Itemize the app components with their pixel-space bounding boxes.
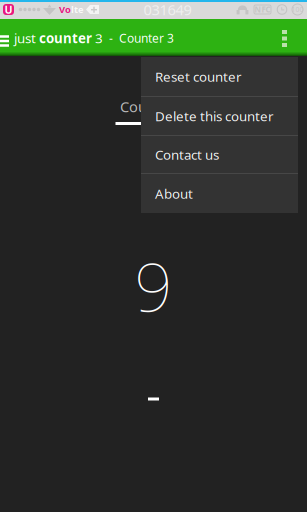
button[interactable]: Counter 3 — [115, 56, 191, 125]
staticText: Counter 3 — [120, 97, 187, 116]
button[interactable]: Open navigation drawer — [0, 23, 9, 47]
button[interactable]: Contact us — [141, 136, 298, 174]
staticText: Vo — [59, 3, 71, 16]
staticText: Reset counter — [155, 68, 242, 85]
staticText: 100 — [291, 5, 303, 14]
staticText: About — [155, 185, 193, 202]
button[interactable]: More options — [272, 23, 307, 47]
staticText: U — [4, 2, 12, 17]
staticText: 9 — [134, 242, 172, 330]
button[interactable]: Reset counter — [141, 57, 298, 97]
button[interactable]: Decrement — [103, 377, 203, 421]
staticText: 3 — [92, 29, 103, 47]
button[interactable]: Delete this counter — [141, 97, 298, 136]
button[interactable]: 9 — [73, 261, 233, 311]
button[interactable]: About — [141, 174, 298, 213]
staticText: 031649 — [143, 0, 191, 19]
staticText: just — [14, 29, 39, 47]
staticText: Delete this counter — [155, 107, 274, 125]
staticText: counter — [39, 29, 92, 47]
staticText: lte — [71, 3, 84, 16]
staticText: Contact us — [155, 146, 219, 163]
staticText: NFC — [254, 4, 270, 15]
staticText: - Counter 3 — [103, 30, 174, 46]
